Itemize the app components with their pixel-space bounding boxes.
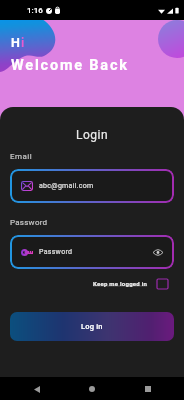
staticText: Email: [10, 152, 33, 161]
staticText: Login: [0, 128, 184, 142]
button[interactable]: abc@gmail.com: [10, 169, 174, 203]
staticText: Welcome Back: [11, 57, 129, 74]
button[interactable]: Home: [84, 381, 100, 397]
staticText: H: [11, 35, 21, 50]
staticText: 1:16: [27, 6, 43, 15]
button[interactable]: Keep me logged in: [157, 279, 168, 289]
button[interactable]: Show password: [151, 245, 165, 259]
staticText: Password: [39, 248, 73, 256]
button[interactable]: Password: [10, 235, 174, 269]
staticText: Password: [10, 218, 48, 227]
staticText: i: [21, 35, 25, 50]
button[interactable]: Recent apps: [140, 381, 156, 397]
button[interactable]: Keep me logged in: [93, 280, 148, 287]
staticText: abc@gmail.com: [39, 182, 94, 190]
staticText: Log in: [81, 322, 103, 331]
button[interactable]: Log in: [10, 312, 174, 341]
button[interactable]: Back: [29, 381, 45, 397]
